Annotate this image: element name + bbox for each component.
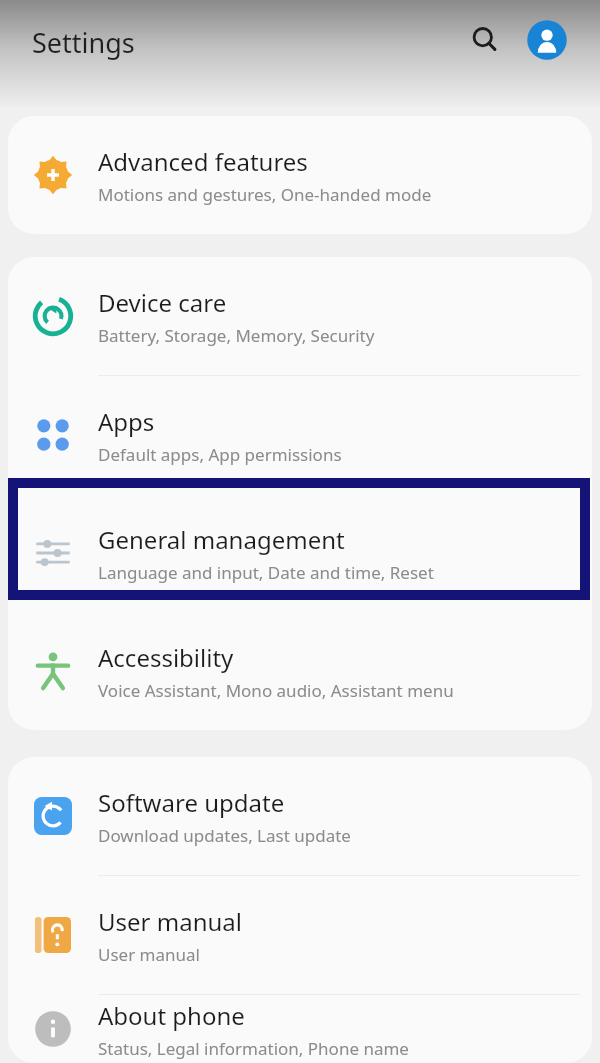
- staticText: User manual: [98, 943, 200, 966]
- button[interactable]: User manual: [8, 876, 592, 994]
- staticText: Accessibility: [98, 641, 234, 674]
- staticText: Battery, Storage, Memory, Security: [98, 324, 375, 347]
- button[interactable]: Search: [462, 17, 508, 63]
- staticText: General management: [98, 523, 345, 556]
- button[interactable]: Accessibility: [8, 612, 592, 730]
- button[interactable]: Account: [524, 17, 570, 63]
- button[interactable]: Advanced features: [8, 116, 592, 234]
- staticText: Voice Assistant, Mono audio, Assistant m…: [98, 679, 454, 702]
- staticText: Settings: [32, 24, 135, 61]
- button[interactable]: General management: [8, 494, 592, 612]
- button[interactable]: About phone: [8, 995, 592, 1063]
- staticText: Device care: [98, 286, 227, 319]
- staticText: Language and input, Date and time, Reset: [98, 561, 434, 584]
- staticText: Apps: [98, 405, 155, 438]
- staticText: Status, Legal information, Phone name: [98, 1037, 409, 1060]
- staticText: Download updates, Last update: [98, 824, 351, 847]
- button[interactable]: Software update: [8, 757, 592, 875]
- staticText: Default apps, App permissions: [98, 443, 342, 466]
- button[interactable]: Apps: [8, 376, 592, 494]
- button[interactable]: Device care: [8, 257, 592, 375]
- staticText: Motions and gestures, One-handed mode: [98, 183, 432, 206]
- staticText: Advanced features: [98, 145, 308, 178]
- staticText: User manual: [98, 905, 242, 938]
- staticText: Software update: [98, 786, 285, 819]
- staticText: About phone: [98, 999, 245, 1032]
